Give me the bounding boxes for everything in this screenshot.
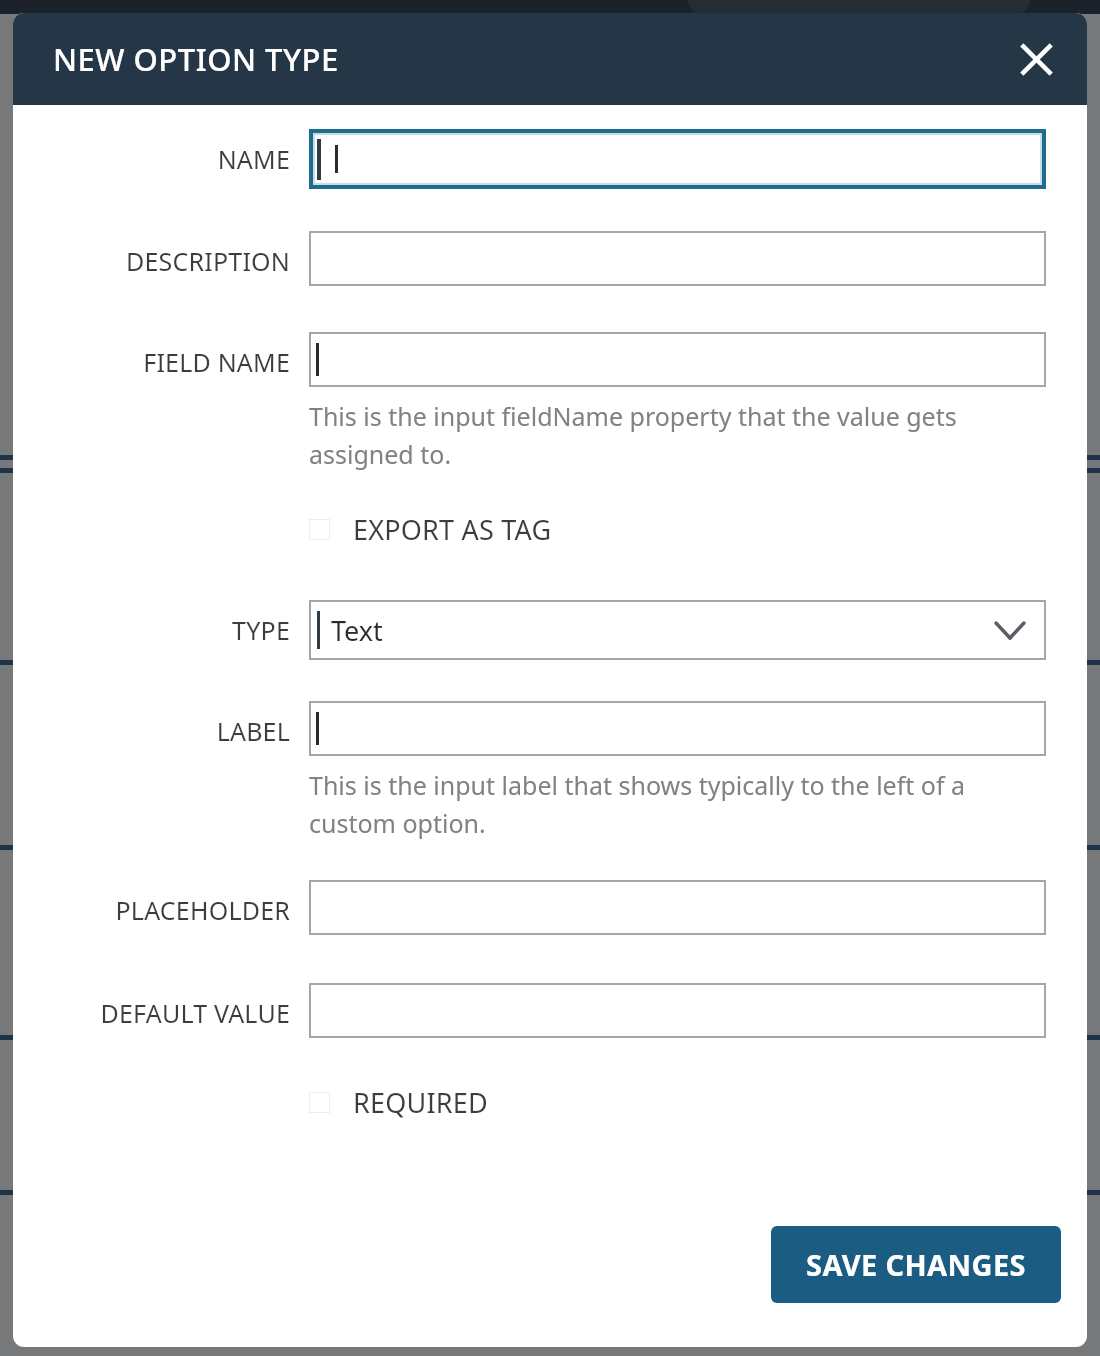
staticText: TYPE bbox=[13, 613, 290, 647]
other: Open type list bbox=[992, 612, 1028, 648]
button[interactable]: EXPORT AS TAG bbox=[309, 511, 552, 548]
button[interactable]: REQUIRED bbox=[309, 1084, 488, 1121]
staticText: FIELD NAME bbox=[13, 345, 290, 379]
staticText: NAME bbox=[13, 142, 290, 176]
staticText: REQUIRED bbox=[353, 1084, 488, 1121]
staticText: NEW OPTION TYPE bbox=[53, 38, 339, 80]
staticText: This is the input label that shows typic… bbox=[309, 768, 1046, 840]
staticText: DESCRIPTION bbox=[13, 244, 290, 278]
button[interactable] bbox=[309, 231, 1046, 286]
button[interactable]: Text bbox=[309, 600, 1046, 660]
button[interactable]: SAVE CHANGES bbox=[771, 1226, 1061, 1303]
staticText: EXPORT AS TAG bbox=[353, 511, 552, 548]
staticText: DEFAULT VALUE bbox=[13, 996, 290, 1030]
staticText: SAVE CHANGES bbox=[806, 1245, 1026, 1284]
staticText: Text bbox=[331, 612, 383, 649]
button[interactable] bbox=[309, 129, 1046, 189]
button[interactable] bbox=[309, 880, 1046, 935]
staticText: PLACEHOLDER bbox=[13, 893, 290, 927]
button[interactable] bbox=[309, 983, 1046, 1038]
staticText: This is the input fieldName property tha… bbox=[309, 399, 1046, 471]
staticText: LABEL bbox=[13, 714, 290, 748]
button[interactable] bbox=[309, 332, 1046, 387]
button[interactable]: Close bbox=[1007, 30, 1065, 88]
button[interactable] bbox=[309, 701, 1046, 756]
